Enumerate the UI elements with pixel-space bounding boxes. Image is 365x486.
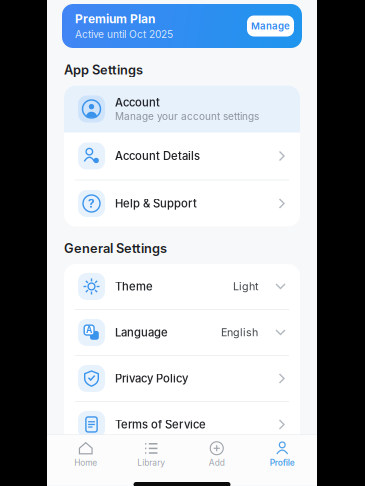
staticText: English [221, 326, 258, 339]
staticText: Privacy Policy [115, 372, 188, 385]
staticText: Language [115, 326, 168, 339]
button[interactable]: Theme [64, 264, 300, 309]
staticText: General Settings [64, 240, 167, 256]
button[interactable]: A [64, 310, 300, 355]
button[interactable]: ? [64, 180, 300, 226]
staticText: Home [74, 457, 97, 468]
button[interactable]: Add [184, 435, 249, 475]
staticText: Manage your account settings [115, 110, 259, 122]
button[interactable]: Home [53, 435, 118, 475]
staticText: Active until Oct 2025 [75, 28, 173, 40]
staticText: Light [233, 280, 258, 293]
button[interactable]: Terms of Service [64, 402, 300, 447]
staticText: App Settings [64, 62, 143, 77]
staticText: Premium Plan [75, 12, 155, 26]
staticText: Manage [251, 20, 290, 32]
staticText: Add [209, 457, 225, 468]
button[interactable]: Privacy Policy [64, 356, 300, 401]
button[interactable]: Account Details [64, 132, 300, 179]
button[interactable]: Library [118, 435, 184, 475]
staticText: Terms of Service [115, 418, 206, 431]
staticText: Help & Support [115, 197, 197, 210]
staticText: Profile [270, 457, 295, 468]
button[interactable]: Profile [249, 435, 315, 475]
staticText: Account [115, 96, 160, 109]
staticText: Library [137, 457, 165, 468]
button[interactable]: Account [64, 85, 300, 132]
button[interactable]: Manage [247, 15, 294, 36]
staticText: ? [88, 196, 95, 211]
staticText: Theme [115, 280, 153, 293]
staticText: Account Details [115, 149, 200, 163]
staticText: A [86, 325, 92, 335]
